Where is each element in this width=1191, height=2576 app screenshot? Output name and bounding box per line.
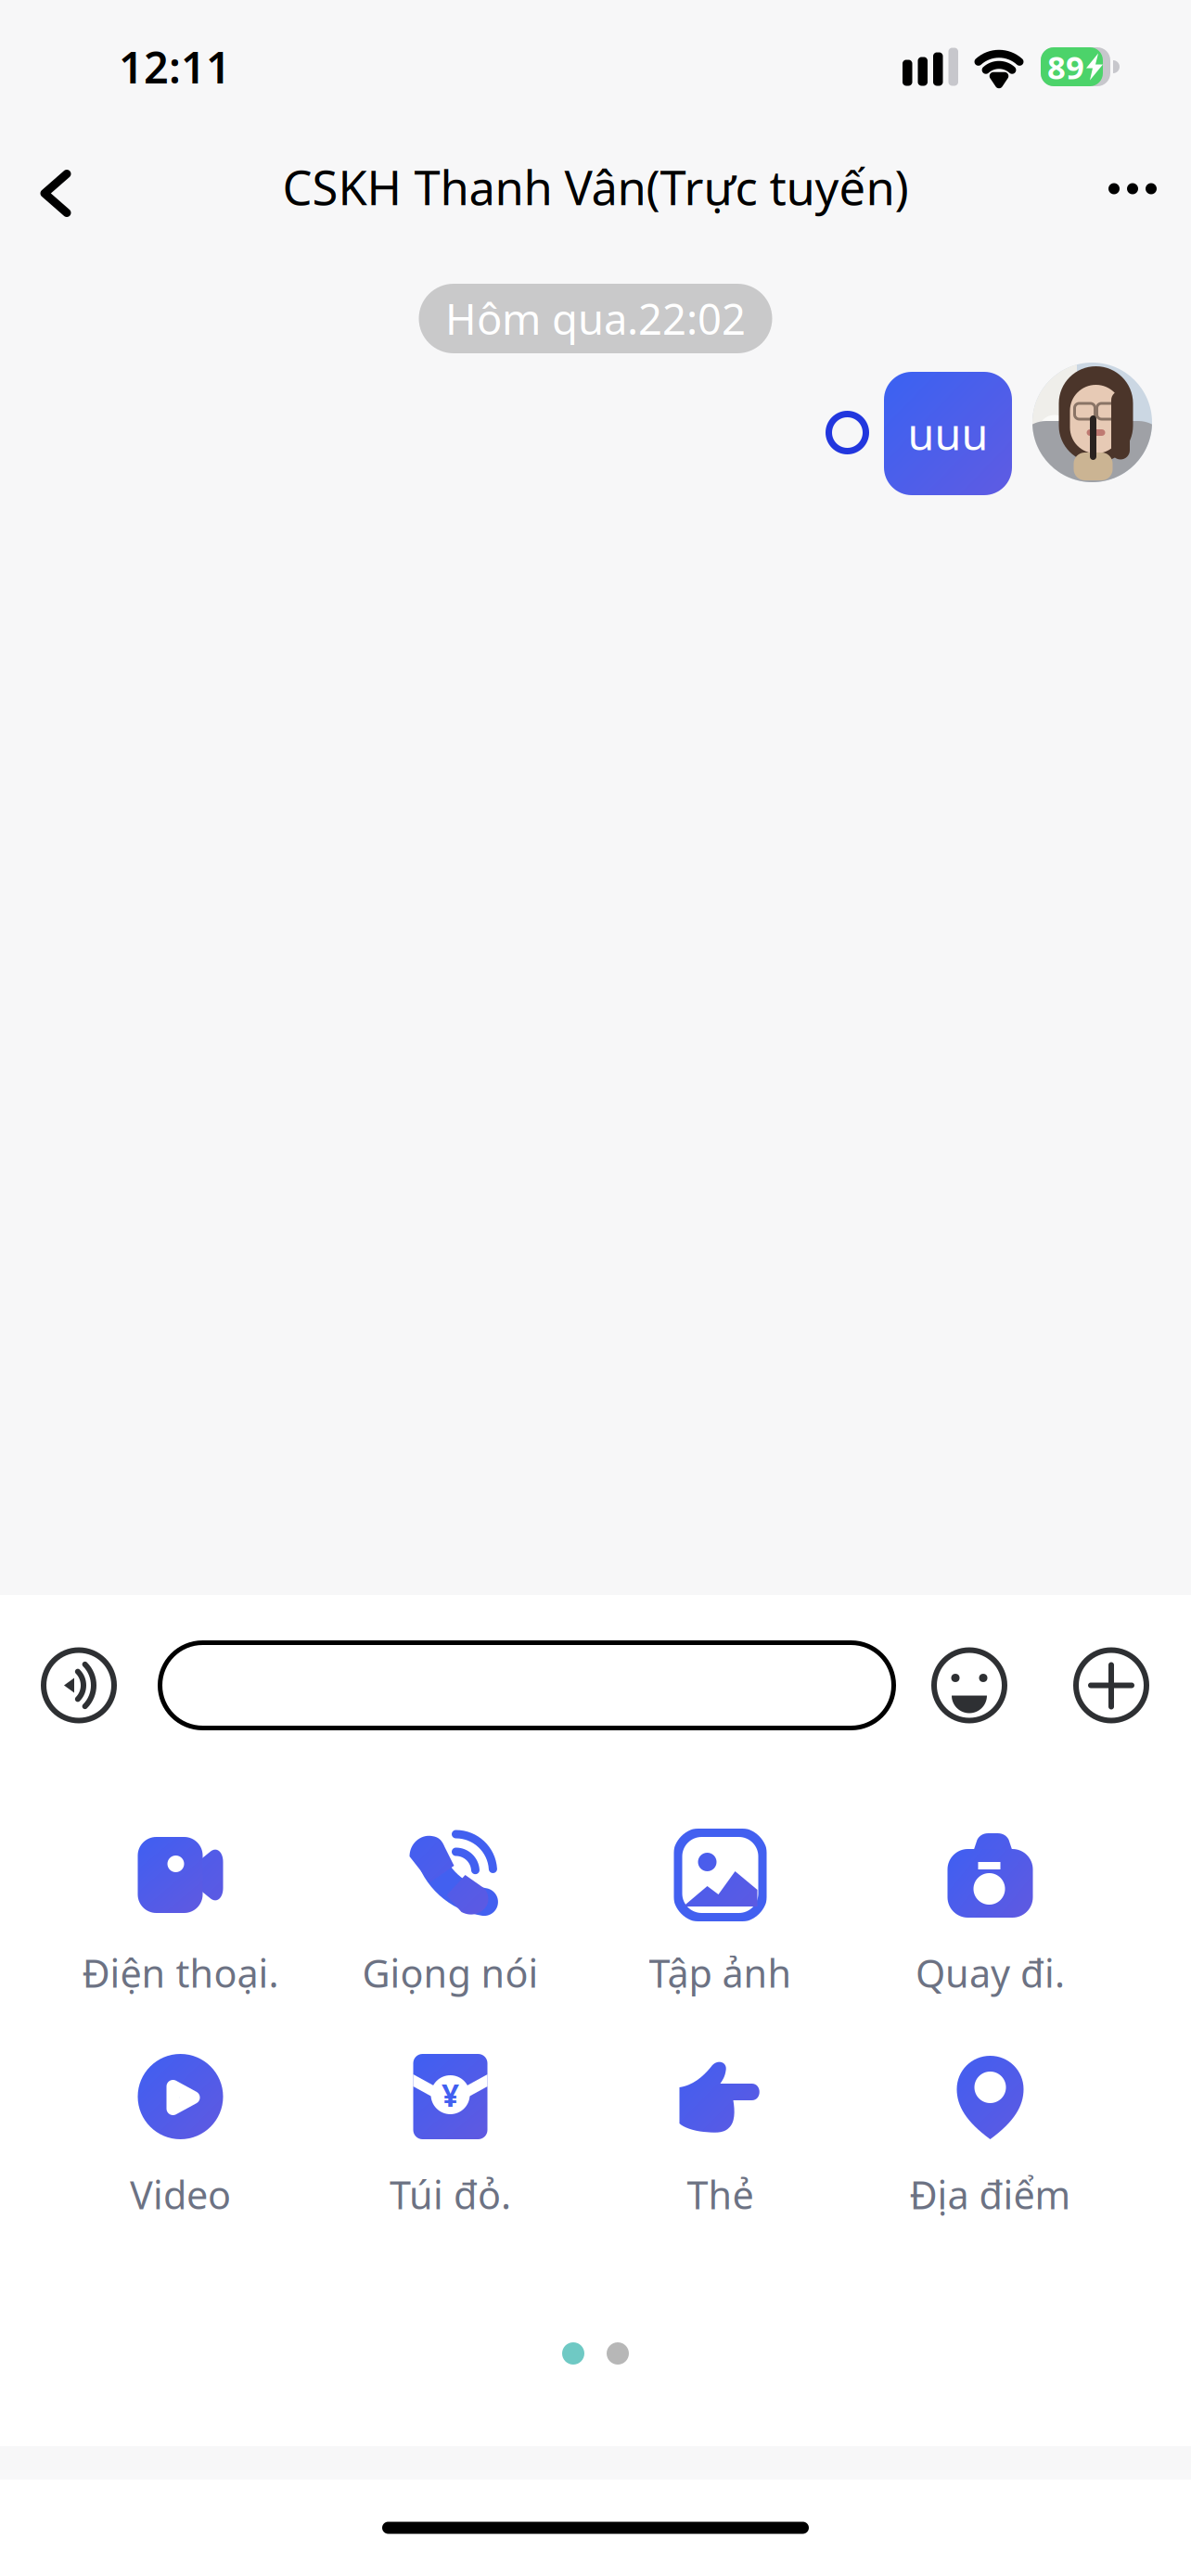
button[interactable]: Voice message xyxy=(41,1647,117,1723)
staticText: Điện thoại. xyxy=(82,1947,279,1998)
button[interactable]: Điện thoại. xyxy=(45,1829,315,2007)
staticText: Địa điểm xyxy=(909,2169,1071,2220)
button[interactable]: Back xyxy=(0,127,106,247)
button[interactable]: ¥ xyxy=(315,2050,585,2228)
staticText: Video xyxy=(130,2169,231,2220)
staticText: Quay đi. xyxy=(916,1947,1065,1998)
button[interactable]: Message field xyxy=(158,1640,896,1730)
staticText: uuu xyxy=(908,405,988,462)
staticText: ¥ xyxy=(442,2074,459,2115)
button[interactable]: Video xyxy=(45,2050,315,2228)
button[interactable]: Quay đi. xyxy=(855,1829,1125,2007)
button[interactable]: Add attachment xyxy=(1073,1647,1149,1723)
staticText: 12:11 xyxy=(119,38,231,96)
staticText: CSKH Thanh Vân(Trực tuyến) xyxy=(282,156,909,218)
staticText: Thẻ xyxy=(687,2169,754,2220)
button[interactable]: Tập ảnh xyxy=(585,1829,855,2007)
staticText: Hôm qua.22:02 xyxy=(445,291,746,346)
staticText: Giọng nói xyxy=(362,1947,538,1998)
staticText: 89 xyxy=(1047,45,1084,88)
staticText: Tập ảnh xyxy=(649,1947,792,1998)
button[interactable]: More options xyxy=(1071,127,1191,247)
staticText: Túi đỏ. xyxy=(390,2169,511,2220)
button[interactable]: Địa điểm xyxy=(855,2050,1125,2228)
button[interactable]: Giọng nói xyxy=(315,1829,585,2007)
button[interactable]: Thẻ xyxy=(585,2050,855,2228)
button[interactable]: Emoji xyxy=(931,1647,1007,1723)
